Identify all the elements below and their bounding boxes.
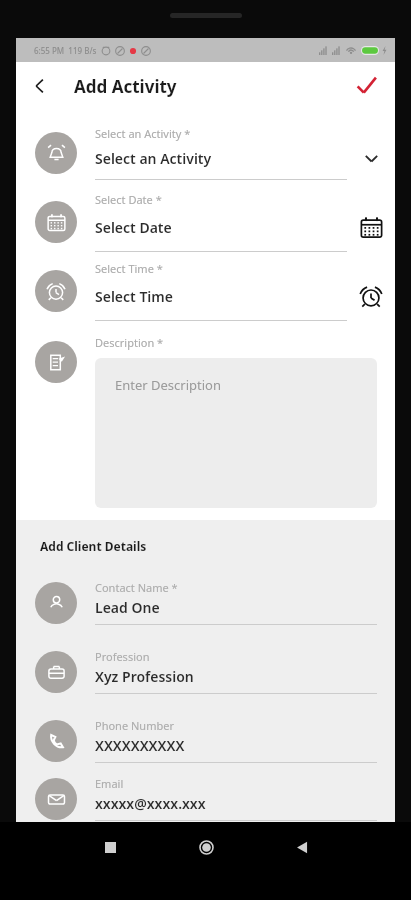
button[interactable]: Contact Name * [16, 568, 395, 637]
button[interactable]: Select Time * [16, 256, 395, 325]
button[interactable]: Expand activity list [357, 144, 385, 172]
staticText: xxxxx@xxxx.xxx [95, 794, 395, 813]
staticText: Email [95, 776, 124, 791]
staticText: Profession [95, 649, 150, 664]
staticText: Add Activity [74, 75, 177, 98]
staticText: Description * [95, 335, 164, 350]
staticText: Contact Name * [95, 580, 178, 595]
staticText: Phone Number [95, 718, 174, 733]
button[interactable]: Home [158, 830, 254, 864]
button[interactable]: Select Date * [16, 187, 395, 256]
staticText: Select Time * [95, 261, 163, 276]
button[interactable]: Save [347, 67, 385, 105]
staticText: Enter Description [115, 376, 221, 394]
button[interactable]: Back [22, 68, 58, 104]
staticText: 6:55 PM 119 B/s [34, 45, 97, 56]
button[interactable]: Back [254, 830, 350, 864]
staticText: Select Date * [95, 192, 162, 207]
staticText: Select Date [95, 218, 347, 237]
staticText: XXXXXXXXXX [95, 736, 395, 755]
button[interactable]: Recent apps [62, 830, 158, 864]
staticText: Xyz Profession [95, 667, 395, 686]
button[interactable]: Pick time [354, 279, 388, 313]
staticText: Select Time [95, 287, 347, 306]
button[interactable]: Select an Activity * [16, 118, 395, 187]
staticText: Lead One [95, 598, 395, 617]
staticText: Select an Activity [95, 149, 347, 168]
staticText: Add Client Details [40, 538, 147, 554]
button[interactable]: Pick date [354, 210, 388, 244]
button[interactable]: Profession [16, 637, 395, 706]
button[interactable]: Phone Number [16, 706, 395, 775]
staticText: Select an Activity * [95, 126, 191, 141]
button[interactable]: Description * [16, 325, 395, 508]
button[interactable]: Email [16, 775, 395, 822]
